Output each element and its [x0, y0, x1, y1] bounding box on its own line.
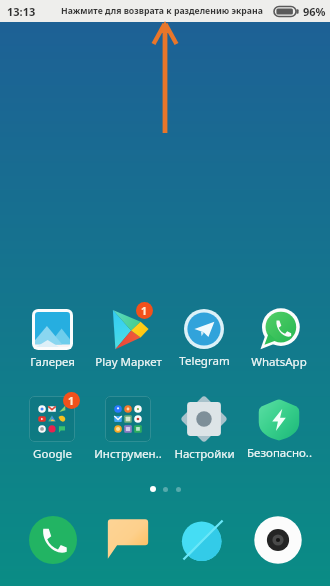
staticText: Telegram	[179, 353, 230, 369]
staticText: Инструмен..	[94, 446, 162, 462]
button[interactable]: Camera	[246, 508, 310, 572]
button[interactable]: Messages	[100, 511, 156, 567]
staticText: Google	[33, 446, 72, 462]
button[interactable]: Безопасно..	[240, 394, 318, 461]
staticText: 96%	[303, 4, 326, 19]
button[interactable]: WhatsApp	[240, 305, 318, 370]
staticText: Безопасно..	[247, 445, 312, 461]
staticText: 13:13	[7, 4, 36, 19]
staticText: Настройки	[174, 446, 235, 462]
staticText: Галерея	[30, 354, 75, 370]
button[interactable]: Галерея	[13, 306, 91, 370]
button[interactable]: Google	[13, 393, 91, 462]
button[interactable]: Telegram	[165, 306, 243, 369]
staticText: WhatsApp	[251, 354, 307, 370]
button[interactable]: Play Маркет	[89, 305, 167, 370]
button[interactable]: Phone	[21, 508, 85, 572]
staticText: Нажмите для возврата к разделению экрана	[61, 5, 263, 17]
staticText: 1	[141, 304, 148, 318]
button[interactable]: Настройки	[165, 393, 243, 462]
staticText: Play Маркет	[95, 354, 162, 370]
button[interactable]: Инструмен..	[89, 393, 167, 462]
button[interactable]: Browser	[174, 511, 232, 569]
staticText: 1	[68, 394, 75, 408]
